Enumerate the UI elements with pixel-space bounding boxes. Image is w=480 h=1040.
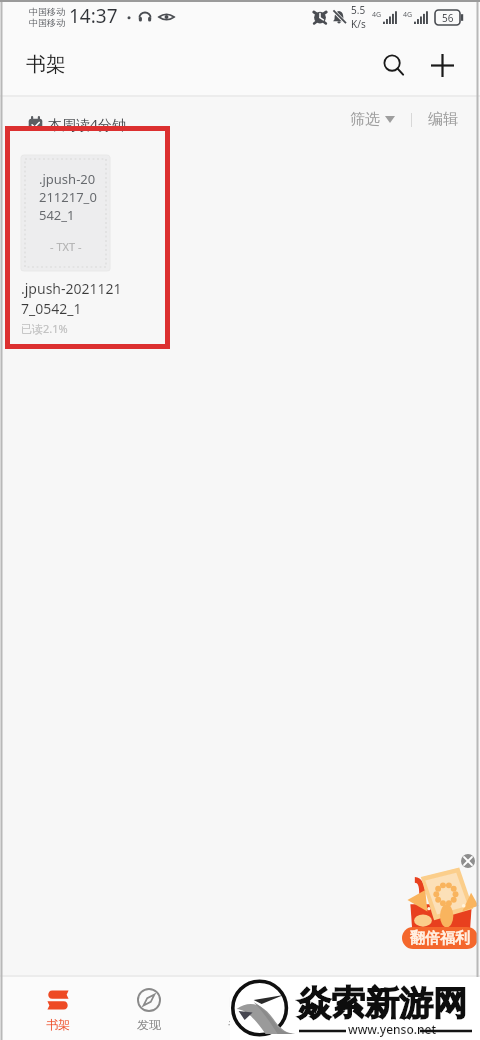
staticText: www.yenso.net [348,1021,437,1037]
staticText: 翻倍福利 [410,929,470,948]
staticText: 焱索新游网 [297,982,467,1025]
staticText: 中国移动 [29,6,65,17]
staticText: .jpush-20 [39,170,96,188]
staticText: 4G [403,10,413,20]
button[interactable]: .jpush-20 [21,155,145,336]
button[interactable]: 编辑 [424,104,462,135]
staticText: .jpush-2021121 7_0542_1 [21,279,122,318]
button[interactable]: Close ad [461,854,475,868]
staticText: 发现 [137,1017,161,1032]
staticText: 中国移动 [29,17,65,28]
staticText: 书架 [26,52,66,77]
button[interactable]: Search [370,41,418,89]
staticText: K/s [351,17,366,31]
staticText: 书城 [228,1017,252,1032]
button[interactable]: 书架 [12,977,103,1040]
button[interactable]: 筛选 [346,104,399,135]
button[interactable]: 书城 [194,977,285,1040]
staticText: 56 [442,11,454,25]
staticText: 本周读4分钟 [48,115,127,134]
staticText: 211217_0 [39,188,97,206]
staticText: - TXT - [50,239,82,254]
button[interactable]: Add [418,41,466,89]
staticText: 5.5 [351,3,366,17]
button[interactable]: 本周读4分钟 [27,111,127,138]
button[interactable]: Red packet ad [403,864,477,936]
staticText: 已读2.1% [21,321,68,336]
button[interactable]: 发现 [103,977,194,1040]
staticText: 筛选 [350,110,380,129]
staticText: 14:37 [69,3,118,29]
staticText: 书架 [46,1017,70,1032]
staticText: 编辑 [428,110,458,129]
button[interactable]: 我的 [285,977,376,1040]
staticText: 我的 [319,1017,343,1032]
staticText: 4G [372,10,382,20]
button[interactable]: 翻倍福利 [402,927,478,949]
staticText: 542_1 [39,206,75,224]
